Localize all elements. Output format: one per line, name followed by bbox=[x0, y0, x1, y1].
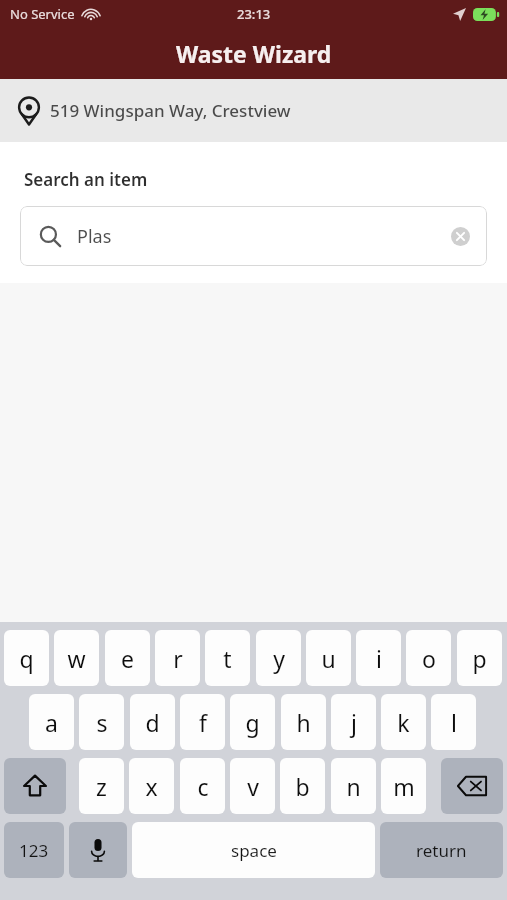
staticText: g bbox=[245, 707, 260, 738]
staticText: Search an item bbox=[24, 168, 148, 191]
button[interactable]: t bbox=[205, 630, 250, 686]
button[interactable]: p bbox=[457, 630, 502, 686]
staticText: z bbox=[96, 771, 107, 802]
staticText: m bbox=[393, 771, 415, 802]
button[interactable]: m bbox=[381, 758, 426, 814]
button[interactable]: a bbox=[29, 694, 74, 750]
staticText: f bbox=[199, 707, 207, 738]
staticText: s bbox=[96, 707, 108, 738]
staticText: w bbox=[67, 643, 86, 674]
staticText: q bbox=[19, 643, 34, 674]
button[interactable]: i bbox=[356, 630, 401, 686]
button[interactable]: space bbox=[132, 822, 375, 878]
button[interactable]: u bbox=[306, 630, 351, 686]
staticText: y bbox=[273, 643, 285, 674]
staticText: i bbox=[376, 643, 382, 674]
staticText: Waste Wizard bbox=[176, 38, 332, 69]
button[interactable]: l bbox=[431, 694, 476, 750]
button[interactable]: Dictation bbox=[69, 822, 127, 878]
staticText: r bbox=[173, 643, 183, 674]
staticText: b bbox=[295, 771, 310, 802]
staticText: 23:13 bbox=[237, 5, 271, 23]
button[interactable]: r bbox=[155, 630, 200, 686]
button[interactable]: z bbox=[79, 758, 124, 814]
button[interactable]: Clear text bbox=[447, 223, 473, 249]
staticText: l bbox=[451, 707, 457, 738]
staticText: Plas bbox=[77, 224, 112, 249]
button[interactable]: y bbox=[256, 630, 301, 686]
button[interactable]: s bbox=[79, 694, 124, 750]
button[interactable]: f bbox=[180, 694, 225, 750]
staticText: t bbox=[223, 643, 232, 674]
staticText: j bbox=[351, 707, 357, 738]
button[interactable]: e bbox=[105, 630, 150, 686]
button[interactable]: h bbox=[281, 694, 326, 750]
button[interactable]: Backspace bbox=[441, 758, 503, 814]
staticText: 123 bbox=[19, 839, 49, 862]
staticText: return bbox=[416, 839, 467, 862]
staticText: v bbox=[247, 771, 259, 802]
button[interactable]: c bbox=[180, 758, 225, 814]
staticText: d bbox=[145, 707, 160, 738]
button[interactable]: return bbox=[380, 822, 503, 878]
staticText: x bbox=[145, 771, 158, 802]
staticText: 519 Wingspan Way, Crestview bbox=[50, 99, 291, 122]
button[interactable]: w bbox=[54, 630, 99, 686]
button[interactable]: d bbox=[130, 694, 175, 750]
staticText: No Service bbox=[10, 5, 75, 23]
button[interactable]: q bbox=[4, 630, 49, 686]
staticText: o bbox=[422, 643, 436, 674]
button[interactable]: k bbox=[381, 694, 426, 750]
button[interactable]: Plas bbox=[20, 206, 487, 266]
button[interactable]: x bbox=[129, 758, 174, 814]
staticText: p bbox=[472, 643, 487, 674]
staticText: n bbox=[346, 771, 361, 802]
button[interactable]: v bbox=[230, 758, 275, 814]
button[interactable]: o bbox=[406, 630, 451, 686]
button[interactable]: g bbox=[230, 694, 275, 750]
staticText: h bbox=[296, 707, 311, 738]
staticText: e bbox=[121, 643, 134, 674]
staticText: space bbox=[231, 839, 277, 862]
button[interactable]: Shift bbox=[4, 758, 66, 814]
staticText: k bbox=[397, 707, 410, 738]
button[interactable]: b bbox=[280, 758, 325, 814]
button[interactable]: Numbers bbox=[4, 822, 64, 878]
staticText: u bbox=[321, 643, 336, 674]
other: Location bbox=[18, 98, 40, 124]
button[interactable]: j bbox=[331, 694, 376, 750]
button[interactable]: n bbox=[331, 758, 376, 814]
button[interactable]: Location bbox=[0, 79, 507, 142]
staticText: a bbox=[45, 707, 58, 738]
staticText: c bbox=[197, 771, 209, 802]
